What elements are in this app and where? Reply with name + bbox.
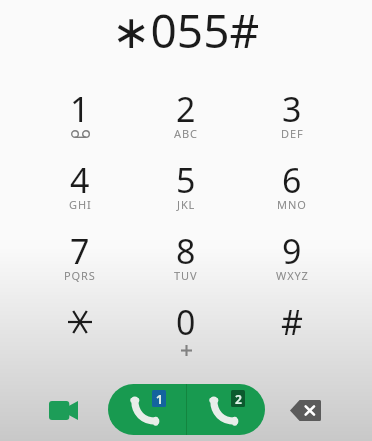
- staticText: MNO: [277, 197, 307, 212]
- staticText: ∗055#: [112, 0, 260, 62]
- staticText: GHI: [69, 197, 92, 212]
- staticText: 3: [282, 86, 302, 132]
- button[interactable]: 3: [239, 77, 345, 148]
- staticText: 2: [176, 86, 196, 132]
- staticText: 4: [70, 157, 90, 203]
- button[interactable]: 1: [27, 77, 133, 148]
- staticText: 2: [235, 391, 242, 407]
- staticText: WXYZ: [276, 268, 309, 283]
- button[interactable]: 6: [239, 148, 345, 219]
- staticText: 0: [176, 299, 196, 345]
- staticText: 5: [176, 157, 196, 203]
- staticText: JKL: [177, 197, 196, 212]
- staticText: DEF: [281, 126, 304, 141]
- button[interactable]: 9: [239, 219, 345, 290]
- button[interactable]: Video call: [40, 388, 84, 432]
- button[interactable]: Call with SIM 1: [108, 384, 186, 435]
- button[interactable]: Call with SIM 2: [187, 384, 265, 435]
- staticText: 8: [176, 228, 196, 274]
- staticText: 7: [70, 228, 90, 274]
- button[interactable]: 8: [133, 219, 239, 290]
- staticText: #: [281, 299, 303, 345]
- button[interactable]: [27, 290, 133, 361]
- button[interactable]: #: [239, 290, 345, 361]
- staticText: ABC: [174, 126, 198, 141]
- button[interactable]: 2: [133, 77, 239, 148]
- button[interactable]: 0: [133, 290, 239, 361]
- button[interactable]: 5: [133, 148, 239, 219]
- staticText: 1: [70, 86, 90, 132]
- button[interactable]: 4: [27, 148, 133, 219]
- staticText: 1: [156, 391, 163, 407]
- button[interactable]: 7: [27, 219, 133, 290]
- staticText: TUV: [174, 268, 198, 283]
- button[interactable]: Backspace: [283, 388, 327, 432]
- staticText: 9: [282, 228, 302, 274]
- staticText: PQRS: [64, 268, 96, 283]
- staticText: 6: [282, 157, 302, 203]
